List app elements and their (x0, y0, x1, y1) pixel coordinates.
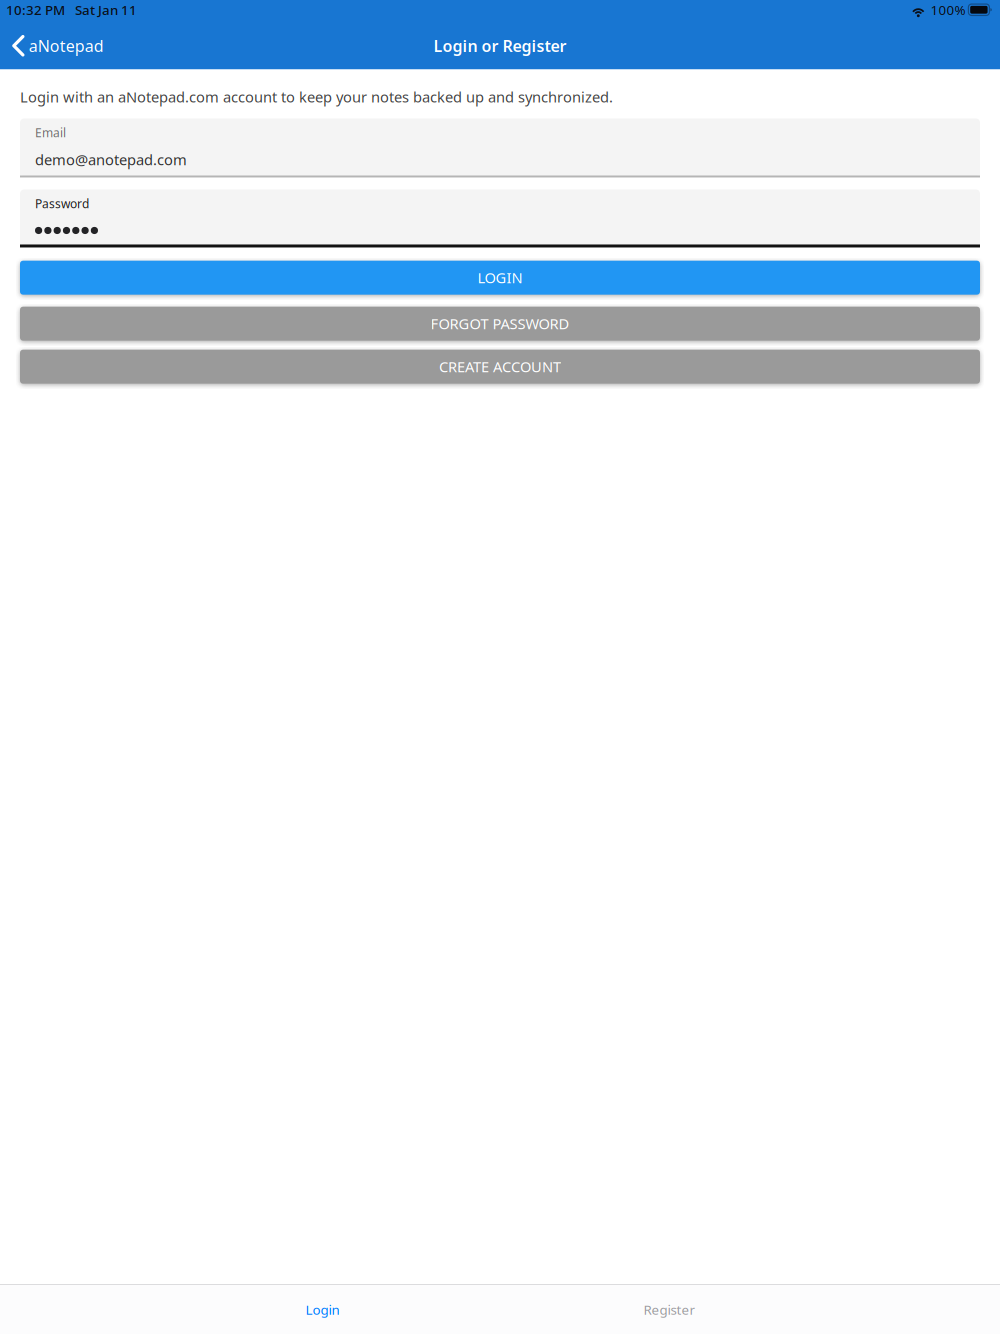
staticText: Login or Register (433, 35, 566, 56)
staticText: 10:32 PM (6, 1, 65, 19)
staticText: 100% (930, 1, 965, 19)
button[interactable]: Register (496, 1285, 843, 1334)
button[interactable]: LOGIN (20, 261, 980, 295)
staticText: Login (305, 1301, 339, 1318)
staticText: LOGIN (477, 268, 522, 287)
staticText: CREATE ACCOUNT (439, 357, 561, 376)
staticText: Password (35, 195, 89, 211)
staticText: Sat Jan 11 (75, 1, 137, 19)
staticText: demo@anotepad.com (35, 150, 187, 169)
staticText: Login with an aNotepad.com account to ke… (20, 87, 613, 106)
staticText: Email (35, 124, 66, 140)
button[interactable]: Email (20, 118, 980, 177)
staticText: Register (643, 1301, 695, 1318)
staticText: FORGOT PASSWORD (430, 314, 569, 333)
button[interactable]: Login (149, 1285, 496, 1334)
button[interactable]: CREATE ACCOUNT (20, 350, 980, 384)
button[interactable]: aNotepad (0, 22, 114, 69)
button[interactable]: FORGOT PASSWORD (20, 307, 980, 341)
staticText: aNotepad (29, 35, 104, 56)
button[interactable]: Password (20, 189, 980, 247)
